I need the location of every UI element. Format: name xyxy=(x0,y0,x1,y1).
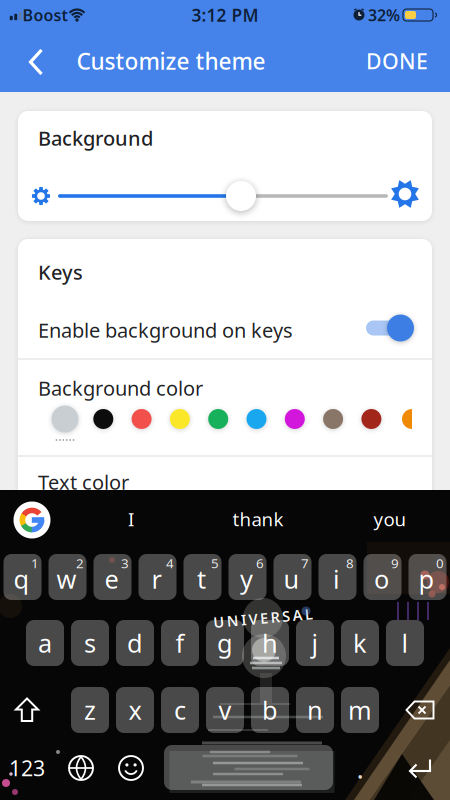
staticText: . xyxy=(357,755,363,785)
staticText: 5 xyxy=(211,554,219,572)
button[interactable]: Brightness slider xyxy=(226,181,256,211)
button[interactable]: Color option xyxy=(208,409,228,429)
staticText: DONE xyxy=(366,47,428,75)
button[interactable]: Maximum brightness xyxy=(390,179,420,209)
staticText: d xyxy=(127,626,143,660)
button[interactable]: Shift xyxy=(14,697,40,723)
button[interactable]: Google xyxy=(13,501,50,538)
staticText: 32% xyxy=(368,4,400,26)
button[interactable]: Color option xyxy=(285,409,305,429)
button[interactable]: Delete xyxy=(405,700,435,720)
button[interactable]: Emoji xyxy=(118,755,143,780)
button[interactable]: v xyxy=(206,687,244,733)
staticText: x xyxy=(128,693,141,727)
staticText: I xyxy=(128,507,134,531)
staticText: p xyxy=(418,562,434,596)
button[interactable]: Return xyxy=(407,758,433,780)
button[interactable]: j xyxy=(296,620,334,666)
button[interactable]: l xyxy=(386,620,424,666)
staticText: o xyxy=(374,562,389,596)
staticText: l xyxy=(401,626,408,660)
button[interactable]: Minimum brightness xyxy=(31,186,50,205)
button[interactable]: c xyxy=(161,687,199,733)
staticText: i xyxy=(333,562,340,596)
staticText: k xyxy=(353,626,367,660)
staticText: 1 xyxy=(31,554,39,572)
button[interactable]: o xyxy=(363,554,401,600)
staticText: Text color xyxy=(38,469,129,495)
staticText: 9 xyxy=(391,554,399,572)
staticText: UNIVERSAL xyxy=(213,608,313,628)
staticText: Keys xyxy=(38,259,83,285)
button[interactable]: x xyxy=(116,687,154,733)
button[interactable]: Light gray xyxy=(51,405,78,432)
staticText: m xyxy=(348,693,372,727)
staticText: s xyxy=(84,626,96,660)
button[interactable]: r xyxy=(138,554,176,600)
staticText: 2 xyxy=(76,554,84,572)
staticText: e xyxy=(104,562,118,596)
button[interactable]: t xyxy=(183,554,221,600)
button[interactable]: Period xyxy=(345,750,375,790)
button[interactable]: n xyxy=(296,687,334,733)
button[interactable]: g xyxy=(206,620,244,666)
button[interactable]: f xyxy=(161,620,199,666)
staticText: h xyxy=(262,626,278,660)
staticText: 3 xyxy=(121,554,129,572)
button[interactable]: thank xyxy=(203,499,313,539)
button[interactable]: Color option xyxy=(132,409,152,429)
button[interactable]: q xyxy=(3,554,41,600)
button[interactable]: Color option xyxy=(361,409,381,429)
staticText: z xyxy=(84,693,96,727)
button[interactable]: 123 xyxy=(5,746,49,790)
staticText: n xyxy=(307,693,323,727)
staticText: Customize theme xyxy=(76,46,265,76)
button[interactable]: k xyxy=(341,620,379,666)
button[interactable]: d xyxy=(116,620,154,666)
button[interactable]: b xyxy=(251,687,289,733)
staticText: 4 xyxy=(166,554,174,572)
staticText: w xyxy=(56,562,76,596)
button[interactable]: i xyxy=(318,554,356,600)
staticText: f xyxy=(175,626,184,660)
staticText: thank xyxy=(232,507,283,531)
staticText: 7 xyxy=(301,554,309,572)
staticText: Background xyxy=(38,125,153,151)
staticText: a xyxy=(38,626,52,660)
button[interactable]: I xyxy=(86,499,176,539)
staticText: y xyxy=(240,562,253,596)
button[interactable]: Back xyxy=(28,48,44,75)
button[interactable]: p xyxy=(408,554,446,600)
button[interactable]: you xyxy=(340,499,440,539)
button[interactable]: s xyxy=(71,620,109,666)
button[interactable]: Space xyxy=(164,745,333,790)
button[interactable]: a xyxy=(26,620,64,666)
button[interactable]: h xyxy=(251,620,289,666)
staticText: 0 xyxy=(436,554,444,572)
button[interactable]: Orange xyxy=(402,409,422,429)
button[interactable]: Next keyboard xyxy=(68,755,93,780)
button[interactable]: m xyxy=(341,687,379,733)
staticText: u xyxy=(283,562,299,596)
staticText: 8 xyxy=(346,554,354,572)
button[interactable]: u xyxy=(273,554,311,600)
button[interactable]: DONE xyxy=(366,47,428,75)
staticText: t xyxy=(197,562,206,596)
staticText: 6 xyxy=(256,554,264,572)
staticText: Enable background on keys xyxy=(38,317,293,343)
button[interactable]: e xyxy=(93,554,131,600)
staticText: q xyxy=(13,562,29,596)
staticText: j xyxy=(311,626,318,660)
button[interactable]: Color option xyxy=(93,409,113,429)
staticText: v xyxy=(218,693,231,727)
button[interactable]: z xyxy=(71,687,109,733)
button[interactable]: y xyxy=(228,554,266,600)
staticText: you xyxy=(373,507,406,531)
button[interactable]: Color option xyxy=(323,409,343,429)
button[interactable]: Color option xyxy=(170,409,190,429)
staticText: c xyxy=(174,693,186,727)
staticText: Boost xyxy=(22,4,67,26)
button[interactable]: Enable background on keys xyxy=(364,314,416,342)
button[interactable]: Color option xyxy=(246,409,266,429)
button[interactable]: w xyxy=(48,554,86,600)
